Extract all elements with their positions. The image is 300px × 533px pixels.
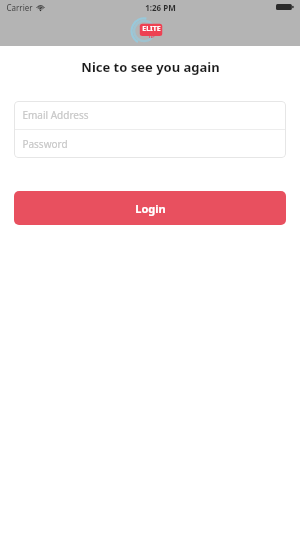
staticText: Password (22, 137, 68, 151)
staticText: Login (135, 201, 166, 216)
button[interactable]: Email Address (14, 101, 286, 129)
staticText: TIP (148, 34, 155, 39)
staticText: ELITE (142, 24, 161, 34)
staticText: Carrier (6, 2, 33, 13)
button[interactable]: Login (14, 191, 286, 225)
staticText: Nice to see you again (81, 58, 220, 76)
staticText: 1:26 PM (145, 2, 176, 13)
button[interactable]: Password (14, 130, 286, 158)
staticText: Email Address (22, 108, 89, 122)
